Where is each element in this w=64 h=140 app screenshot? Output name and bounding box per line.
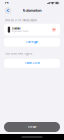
button[interactable]: Create [4, 122, 60, 132]
staticText: Add Trigger [26, 41, 38, 43]
staticText: Choose Action [24, 62, 39, 65]
staticText: When any of the following happens [5, 19, 37, 22]
button[interactable]: Choose Action [4, 59, 60, 68]
staticText: Create [28, 125, 36, 129]
staticText: Doorbell [12, 27, 21, 30]
staticText: 9:41 [4, 2, 8, 4]
button[interactable]: Back [4, 6, 12, 14]
button[interactable]: Add Trigger [4, 38, 60, 47]
button[interactable]: Doorbell [4, 24, 60, 36]
staticText: Someone is at the door [12, 30, 29, 32]
staticText: Automation [22, 8, 41, 13]
staticText: These actions will be triggered [5, 53, 32, 55]
